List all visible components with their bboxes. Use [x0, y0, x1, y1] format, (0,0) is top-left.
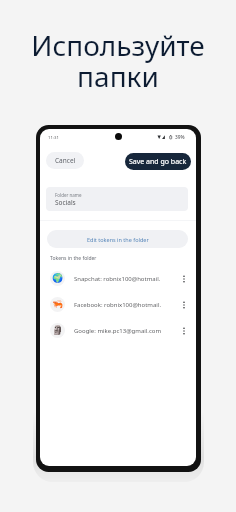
button[interactable]: Cancel — [46, 152, 84, 169]
staticText: 🦐 — [52, 299, 64, 310]
button[interactable]: Edit tokens in the folder — [47, 230, 188, 248]
staticText: Facebook: robnix100@hotmail. — [74, 301, 162, 309]
button[interactable]: 🗿 — [40, 319, 196, 342]
button[interactable]: More options — [178, 273, 190, 285]
button[interactable]: More options — [178, 299, 190, 311]
staticText: Snapchat: robnix100@hotmail. — [74, 275, 161, 283]
staticText: Google: mike.pc13@gmail.com — [74, 327, 162, 335]
staticText: 39% — [175, 134, 185, 141]
button[interactable]: 🌍 — [40, 267, 196, 290]
staticText: 🌍 — [52, 273, 64, 284]
staticText: Tokens in the folder — [50, 255, 97, 262]
staticText: Cancel — [55, 156, 76, 165]
staticText: Используйте папки — [31, 26, 205, 96]
staticText: 11:31 — [48, 134, 59, 140]
staticText: Socials — [55, 198, 76, 207]
staticText: Save and go back — [129, 157, 187, 167]
button[interactable]: More options — [178, 325, 190, 337]
staticText: 🗿 — [52, 325, 64, 336]
button[interactable]: Save and go back — [125, 153, 191, 170]
staticText: Edit tokens in the folder — [87, 236, 149, 243]
button[interactable]: Folder name — [46, 187, 188, 211]
staticText: Folder name — [55, 192, 82, 198]
button[interactable]: 🦐 — [40, 293, 196, 316]
